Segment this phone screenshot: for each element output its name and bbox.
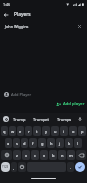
staticText: Add Player — [11, 92, 32, 97]
button[interactable]: , — [11, 162, 17, 172]
button[interactable]: u — [51, 126, 59, 136]
staticText: o — [72, 129, 75, 134]
button[interactable]: Add player — [54, 99, 87, 109]
button[interactable]: ?123 — [1, 162, 10, 172]
button[interactable]: h — [47, 138, 55, 148]
staticText: b — [52, 153, 55, 158]
staticText: q — [3, 129, 6, 134]
button[interactable]: v — [40, 150, 48, 160]
button[interactable]: p — [78, 126, 86, 136]
button[interactable]: q — [1, 126, 8, 136]
button[interactable]: s — [13, 138, 20, 148]
button[interactable]: m — [67, 150, 75, 160]
button[interactable]: y — [42, 126, 50, 136]
button[interactable]: Trump — [12, 115, 27, 124]
staticText: l — [77, 141, 79, 146]
staticText: s — [16, 141, 18, 146]
button[interactable]: Backspace — [76, 150, 86, 160]
button[interactable]: Emoji — [18, 162, 26, 172]
staticText: 1:46 — [3, 2, 11, 7]
button[interactable]: r — [25, 126, 32, 136]
staticText: , — [13, 165, 15, 170]
button[interactable]: . — [67, 162, 74, 172]
staticText: John Wiggins — [5, 24, 29, 29]
button[interactable]: n — [58, 150, 66, 160]
staticText: j — [59, 141, 61, 146]
staticText: u — [54, 129, 57, 134]
staticText: v — [43, 153, 46, 158]
button[interactable]: Trumps — [56, 115, 73, 124]
staticText: Trumpet — [33, 117, 50, 122]
staticText: g — [41, 141, 44, 146]
staticText: k — [68, 141, 71, 146]
staticText: a — [7, 141, 10, 146]
button[interactable]: c — [31, 150, 39, 160]
staticText: ?123 — [2, 165, 9, 169]
staticText: n — [61, 153, 64, 158]
button[interactable]: k — [65, 138, 73, 148]
staticText: i — [63, 129, 65, 134]
button[interactable]: Add Player — [0, 90, 87, 99]
button[interactable]: w — [9, 126, 16, 136]
staticText: c — [34, 153, 36, 158]
button[interactable]: l — [74, 138, 82, 148]
button[interactable]: Enter — [75, 162, 85, 172]
staticText: Add player — [63, 101, 85, 107]
staticText: . — [70, 165, 72, 170]
button[interactable]: f — [29, 138, 37, 148]
button[interactable]: o — [69, 126, 77, 136]
button[interactable]: Search — [3, 116, 9, 122]
button[interactable]: b — [49, 150, 57, 160]
button[interactable]: Voice input — [77, 116, 83, 122]
staticText: z — [16, 153, 18, 158]
button[interactable]: j — [56, 138, 64, 148]
staticText: h — [50, 141, 53, 146]
button[interactable]: Trumpet — [32, 115, 51, 124]
staticText: x — [25, 153, 28, 158]
staticText: m — [69, 153, 73, 158]
button[interactable]: d — [21, 138, 28, 148]
staticText: r — [28, 129, 30, 134]
button[interactable]: Shift — [1, 150, 12, 160]
staticText: y — [45, 129, 48, 134]
staticText: e — [19, 129, 22, 134]
staticText: p — [81, 129, 84, 134]
staticText: t — [36, 129, 38, 134]
staticText: d — [23, 141, 26, 146]
button[interactable]: g — [38, 138, 46, 148]
staticText: Trumps — [57, 117, 72, 122]
button[interactable]: z — [13, 150, 21, 160]
staticText: Trump — [13, 117, 26, 122]
staticText: w — [11, 129, 15, 134]
button[interactable]: x — [22, 150, 30, 160]
button[interactable]: Back — [1, 10, 11, 20]
staticText: Players — [14, 11, 31, 18]
staticText: f — [32, 141, 34, 146]
button[interactable]: e — [17, 126, 24, 136]
button[interactable]: a — [5, 138, 12, 148]
button[interactable]: John Wiggins — [0, 21, 87, 31]
button[interactable]: Remove player — [75, 22, 83, 30]
button[interactable]: t — [33, 126, 41, 136]
button[interactable]: i — [60, 126, 68, 136]
